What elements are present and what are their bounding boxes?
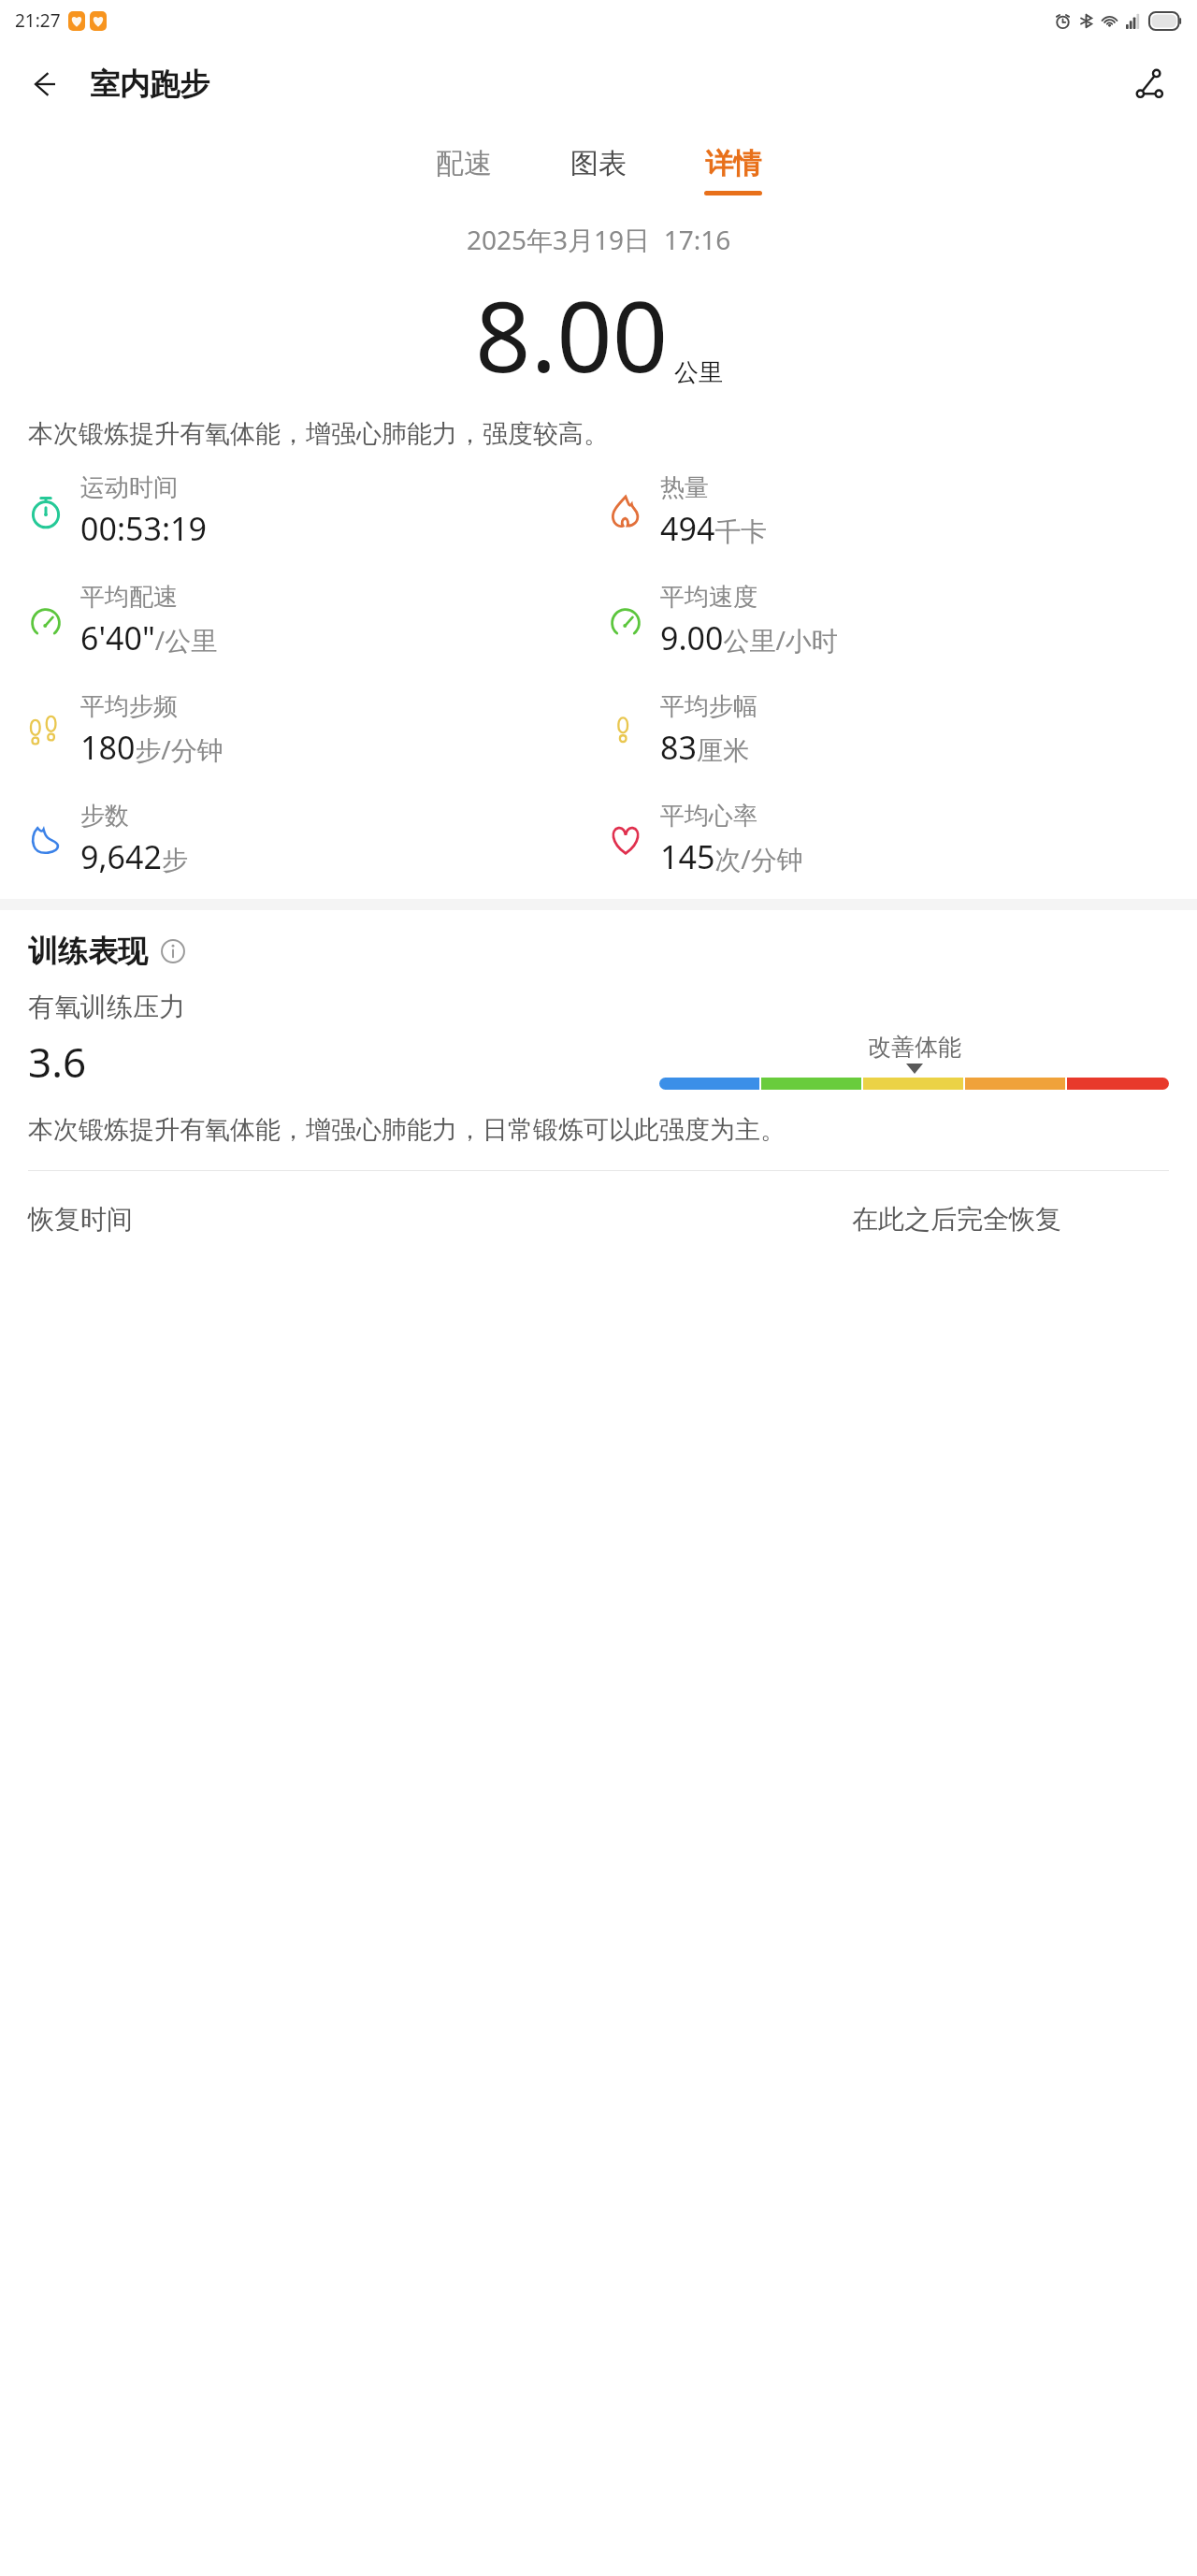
staticText: 详情: [705, 146, 761, 181]
staticText: 8.00: [475, 268, 669, 401]
staticText: 494千卡: [660, 507, 768, 550]
staticText: 9.00公里/小时: [660, 616, 838, 659]
staticText: 平均配速: [80, 582, 178, 613]
staticText: 9,642步: [80, 835, 188, 878]
staticText: 训练表现: [28, 933, 148, 970]
staticText: 恢复时间: [28, 1203, 133, 1236]
staticText: 图表: [570, 146, 627, 181]
staticText: 2025年3月19日 17:16: [467, 222, 731, 257]
button[interactable]: 平均步幅: [604, 687, 1184, 773]
button[interactable]: 详情: [695, 140, 772, 201]
staticText: 步数: [80, 801, 129, 832]
button[interactable]: 平均配速: [24, 578, 604, 663]
staticText: 3.6: [28, 1034, 87, 1090]
button[interactable]: Share: [1122, 57, 1176, 111]
staticText: 180步/分钟: [80, 726, 224, 769]
staticText: 本次锻炼提升有氧体能，增强心肺能力，日常锻炼可以此强度为主。: [28, 1114, 786, 1146]
staticText: 6'40"/公里: [80, 616, 218, 659]
button[interactable]: 平均速度: [604, 578, 1184, 663]
staticText: 平均步幅: [660, 691, 757, 722]
staticText: 公里: [674, 357, 723, 388]
button[interactable]: Back: [17, 57, 71, 111]
button[interactable]: 配速: [425, 140, 502, 201]
staticText: 有氧训练压力: [28, 991, 185, 1023]
staticText: 21:27: [15, 8, 61, 33]
button[interactable]: 运动时间: [24, 469, 604, 554]
staticText: 热量: [660, 472, 709, 503]
staticText: 00:53:19: [80, 507, 207, 550]
button[interactable]: Info: [157, 935, 189, 967]
staticText: 145次/分钟: [660, 835, 803, 878]
staticText: 改善体能: [868, 1033, 961, 1062]
staticText: 平均速度: [660, 582, 757, 613]
staticText: 配速: [436, 146, 492, 181]
button[interactable]: 步数: [24, 797, 604, 882]
button[interactable]: 恢复时间: [28, 1203, 1169, 1236]
staticText: 本次锻炼提升有氧体能，增强心肺能力，强度较高。: [28, 418, 1169, 450]
staticText: 室内跑步: [90, 65, 209, 103]
staticText: 平均步频: [80, 691, 178, 722]
staticText: 83厘米: [660, 726, 749, 769]
staticText: 运动时间: [80, 472, 178, 503]
button[interactable]: 图表: [560, 140, 637, 201]
button[interactable]: 平均心率: [604, 797, 1184, 882]
staticText: 平均心率: [660, 801, 757, 832]
staticText: 在此之后完全恢复: [852, 1203, 1061, 1236]
button[interactable]: 热量: [604, 469, 1184, 554]
button[interactable]: 平均步频: [24, 687, 604, 773]
